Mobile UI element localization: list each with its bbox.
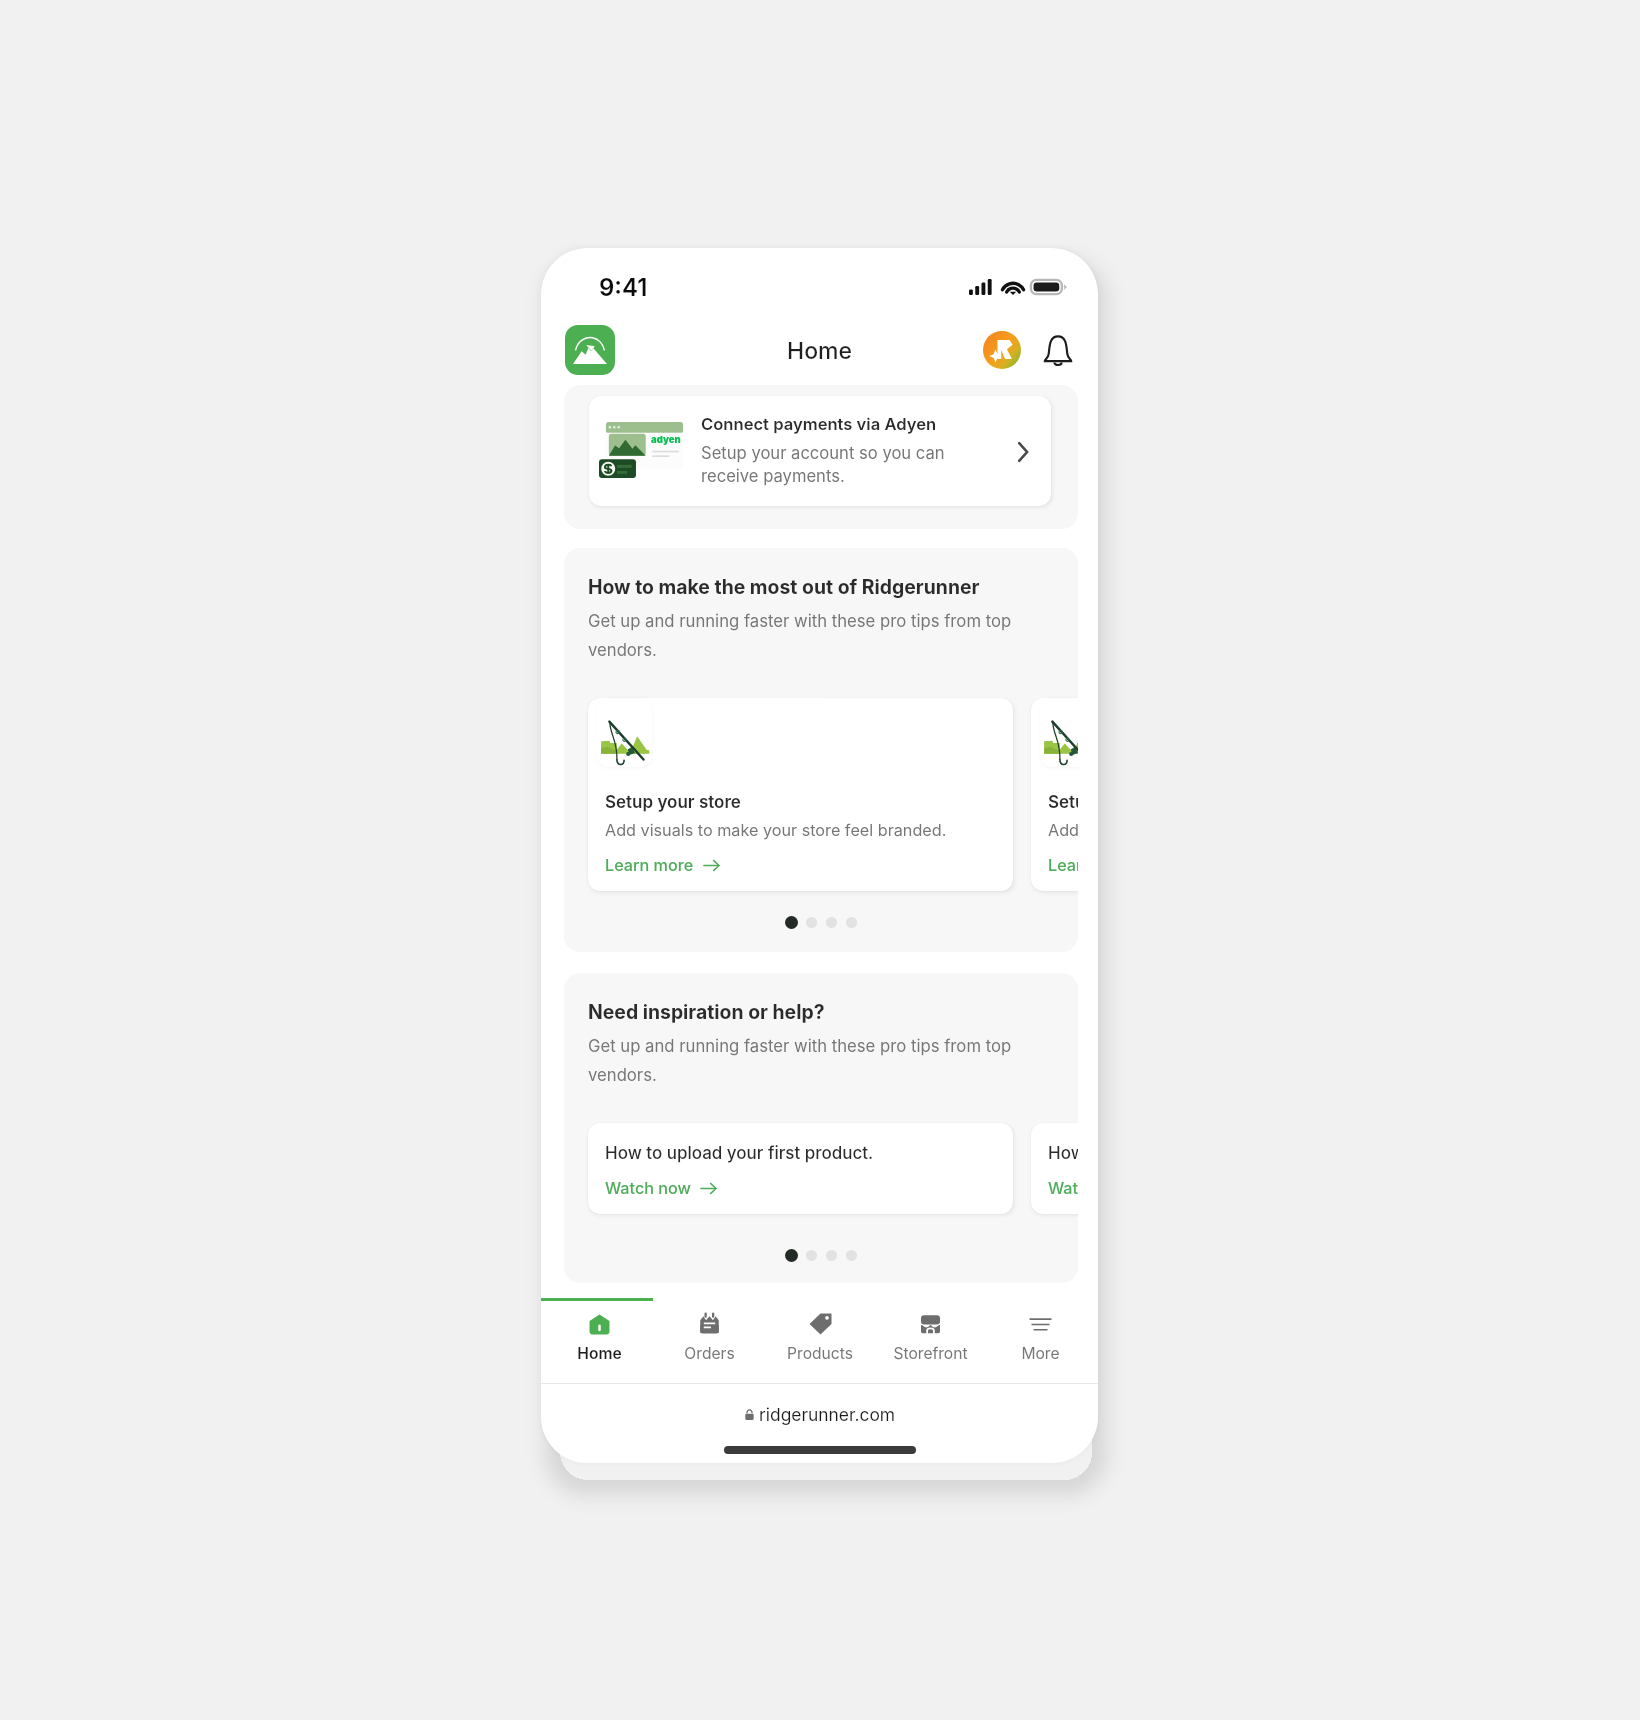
- staticText: Get up and running faster with these pro…: [588, 611, 1016, 660]
- button[interactable]: Setup your store: [588, 698, 1013, 891]
- staticText: How to upload your first product.: [605, 1143, 874, 1164]
- staticText: Learn more: [605, 855, 694, 875]
- button[interactable]: Storefront: [878, 1301, 982, 1384]
- staticText: Add visuals to make your store feel bran…: [1048, 820, 1078, 840]
- staticText: Storefront: [893, 1344, 968, 1363]
- button[interactable]: Page 1: [785, 916, 798, 929]
- staticText: Learn more: [1048, 855, 1078, 875]
- staticText: adyen: [651, 434, 681, 445]
- button[interactable]: adyen: [589, 396, 1051, 506]
- staticText: Add visuals to make your store feel bran…: [605, 820, 947, 840]
- button[interactable]: Learn more: [1048, 855, 1078, 875]
- staticText: Need inspiration or help?: [588, 1000, 825, 1023]
- button[interactable]: Products: [768, 1301, 872, 1384]
- staticText: How to make the most out of Ridgerunner: [588, 575, 980, 598]
- staticText: Setup your account so you can receive pa…: [701, 443, 945, 486]
- button[interactable]: How to upload your first product.: [588, 1123, 1013, 1214]
- button[interactable]: Page 1: [785, 1249, 798, 1262]
- button[interactable]: Watch now: [605, 1178, 717, 1198]
- staticText: Connect payments via Adyen: [701, 414, 937, 434]
- button[interactable]: Setup your store: [1031, 698, 1078, 891]
- staticText: Get up and running faster with these pro…: [588, 1036, 1016, 1085]
- button[interactable]: Home: [547, 1301, 651, 1384]
- button[interactable]: Page 4: [845, 1249, 858, 1262]
- button[interactable]: Notifications: [1033, 325, 1083, 375]
- button[interactable]: Page 3: [825, 916, 838, 929]
- button[interactable]: Ridgerunner: [565, 325, 615, 375]
- staticText: Watch now: [605, 1178, 691, 1198]
- button[interactable]: Page 2: [805, 1249, 818, 1262]
- button[interactable]: Page 2: [805, 916, 818, 929]
- staticText: 9:41: [599, 273, 648, 302]
- button[interactable]: Orders: [657, 1301, 761, 1384]
- staticText: Watch now: [1048, 1178, 1078, 1198]
- staticText: Home: [577, 1344, 622, 1363]
- button[interactable]: Page 4: [845, 916, 858, 929]
- staticText: Orders: [684, 1344, 735, 1363]
- staticText: How to upload your first product.: [1048, 1143, 1078, 1164]
- button[interactable]: Page 3: [825, 1249, 838, 1262]
- staticText: ridgerunner.com: [759, 1404, 896, 1425]
- staticText: Setup your store: [605, 792, 741, 813]
- staticText: Products: [787, 1344, 853, 1363]
- staticText: More: [1021, 1344, 1060, 1363]
- button[interactable]: How to upload your first product.: [1031, 1123, 1078, 1214]
- staticText: Setup your store: [1048, 792, 1078, 813]
- button[interactable]: More: [988, 1301, 1092, 1384]
- button[interactable]: Watch now: [1048, 1178, 1078, 1198]
- staticText: Home: [787, 337, 852, 365]
- button[interactable]: Learn more: [605, 855, 720, 875]
- button[interactable]: Account: [983, 331, 1021, 369]
